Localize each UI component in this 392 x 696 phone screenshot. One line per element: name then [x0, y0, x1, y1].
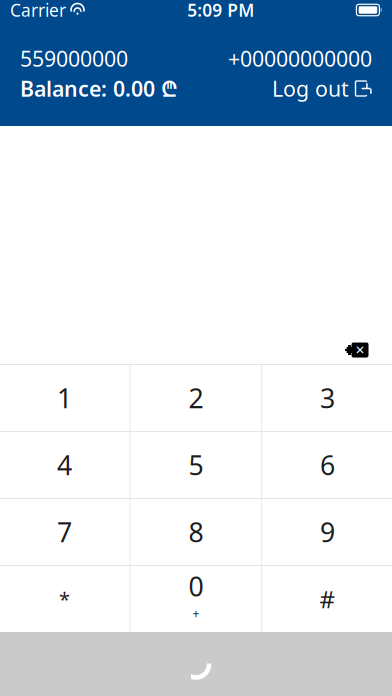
button[interactable]: 1 [0, 365, 130, 431]
button[interactable]: 0 [131, 566, 261, 632]
staticText: # [320, 583, 336, 615]
button[interactable]: 3 [262, 365, 392, 431]
staticText: Carrier [10, 0, 66, 21]
staticText: ✕ [355, 343, 365, 357]
staticText: 2 [188, 380, 203, 416]
staticText: 9 [320, 514, 335, 550]
staticText: 4 [57, 447, 72, 483]
staticText: Balance: 0.00 ₾ [20, 74, 178, 103]
staticText: * [59, 586, 70, 612]
button[interactable]: 6 [262, 432, 392, 498]
button[interactable]: 8 [131, 499, 261, 565]
button[interactable]: Log out [272, 74, 372, 103]
staticText: 8 [188, 514, 203, 550]
staticText: Log out [272, 74, 349, 103]
button[interactable]: 7 [0, 499, 130, 565]
staticText: 5:09 PM [187, 0, 254, 21]
button[interactable]: 5 [131, 432, 261, 498]
staticText: 5 [188, 447, 203, 483]
staticText: +00000000000 [228, 44, 372, 73]
button[interactable]: 2 [131, 365, 261, 431]
button[interactable]: Delete [334, 336, 380, 364]
staticText: 7 [57, 514, 72, 550]
staticText: 559000000 [20, 44, 128, 73]
staticText: 3 [320, 380, 335, 416]
staticText: + [192, 606, 199, 622]
button[interactable]: 4 [0, 432, 130, 498]
button[interactable]: * [0, 566, 130, 632]
staticText: 6 [320, 447, 335, 483]
staticText: 0 [188, 568, 203, 604]
button[interactable]: Call [0, 632, 392, 696]
button[interactable]: 9 [262, 499, 392, 565]
button[interactable]: # [262, 566, 392, 632]
staticText: 1 [57, 380, 72, 416]
